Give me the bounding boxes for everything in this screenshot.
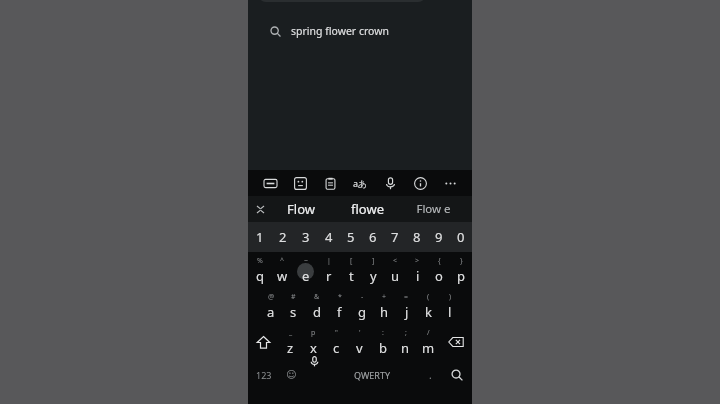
button[interactable]: Voice typing: [303, 360, 326, 390]
button[interactable]: ^: [271, 252, 294, 288]
button[interactable]: _: [279, 324, 302, 360]
staticText: _: [289, 328, 293, 338]
staticText: >: [415, 256, 420, 266]
button[interactable]: <: [384, 252, 406, 288]
staticText: u: [391, 267, 400, 285]
staticText: p: [311, 328, 316, 338]
staticText: d: [313, 303, 321, 321]
staticText: w: [277, 267, 288, 285]
button[interactable]: %: [248, 252, 271, 288]
staticText: m: [422, 339, 435, 357]
staticText: s: [290, 303, 297, 321]
button[interactable]: [: [340, 252, 362, 288]
staticText: ;: [405, 328, 407, 338]
staticText: a: [267, 303, 275, 321]
button[interactable]: 3: [294, 222, 317, 252]
staticText: p: [457, 267, 465, 285]
staticText: (: [427, 292, 430, 302]
staticText: r: [326, 267, 332, 285]
button[interactable]: Stickers: [290, 173, 310, 193]
button[interactable]: /: [417, 324, 440, 360]
staticText: h: [380, 303, 389, 321]
button[interactable]: Flow: [268, 196, 334, 222]
button[interactable]: &: [305, 288, 328, 324]
staticText: ☺: [286, 369, 297, 381]
staticText: 8: [413, 228, 421, 246]
staticText: v: [356, 339, 363, 357]
button[interactable]: :: [371, 324, 394, 360]
button[interactable]: Expand suggestions: [252, 201, 268, 217]
button[interactable]: ": [325, 324, 348, 360]
button[interactable]: ): [439, 288, 461, 324]
staticText: k: [425, 303, 432, 321]
button[interactable]: ;: [394, 324, 417, 360]
button[interactable]: Info: [410, 173, 430, 193]
button[interactable]: @: [259, 288, 282, 324]
staticText: e: [302, 267, 310, 285]
button[interactable]: Shift: [248, 324, 279, 360]
button[interactable]: Clipboard: [320, 173, 340, 193]
button[interactable]: 0: [450, 222, 472, 252]
button[interactable]: GIF: [260, 173, 280, 193]
button[interactable]: Emoji: [279, 360, 303, 390]
staticText: [: [350, 256, 353, 266]
button[interactable]: spring: [258, 0, 426, 2]
button[interactable]: ': [348, 324, 371, 360]
button[interactable]: (: [417, 288, 439, 324]
button[interactable]: More options: [440, 173, 460, 193]
button[interactable]: 4: [317, 222, 340, 252]
button[interactable]: =: [395, 288, 417, 324]
button[interactable]: |: [317, 252, 340, 288]
staticText: ": [335, 328, 338, 338]
button[interactable]: p: [302, 324, 325, 360]
button[interactable]: spring flower crown: [248, 16, 472, 46]
staticText: Flow e: [416, 201, 451, 217]
staticText: 5: [347, 228, 355, 246]
staticText: x: [310, 339, 317, 357]
button[interactable]: flowe: [334, 196, 400, 222]
staticText: .: [429, 368, 432, 382]
staticText: |: [327, 256, 331, 266]
staticText: 4: [325, 228, 333, 246]
staticText: <: [393, 256, 398, 266]
button[interactable]: Search: [442, 360, 472, 390]
button[interactable]: Translate: [350, 173, 370, 193]
button[interactable]: 2: [271, 222, 294, 252]
button[interactable]: Flow e: [400, 196, 466, 222]
staticText: o: [435, 267, 443, 285]
button[interactable]: 6: [362, 222, 384, 252]
button[interactable]: 8: [406, 222, 428, 252]
button[interactable]: -: [351, 288, 373, 324]
staticText: t: [349, 267, 354, 285]
staticText: y: [370, 267, 377, 285]
staticText: b: [379, 339, 387, 357]
button[interactable]: 123: [248, 360, 279, 390]
staticText: 6: [369, 228, 377, 246]
button[interactable]: 7: [384, 222, 406, 252]
staticText: 2: [279, 228, 287, 246]
button[interactable]: }: [450, 252, 472, 288]
button[interactable]: *: [328, 288, 351, 324]
button[interactable]: QWERTY: [326, 360, 419, 390]
staticText: 9: [435, 228, 443, 246]
staticText: &: [314, 292, 320, 302]
staticText: ]: [372, 256, 375, 266]
button[interactable]: Backspace: [440, 324, 472, 360]
button[interactable]: +: [373, 288, 395, 324]
staticText: j: [405, 303, 409, 321]
button[interactable]: 9: [428, 222, 450, 252]
button[interactable]: .: [419, 360, 442, 390]
button[interactable]: #: [282, 288, 305, 324]
staticText: %: [257, 256, 263, 266]
button[interactable]: Voice input: [380, 173, 400, 193]
staticText: QWERTY: [354, 369, 391, 381]
button[interactable]: 1: [248, 222, 271, 252]
button[interactable]: ~: [294, 252, 317, 288]
button[interactable]: ]: [362, 252, 384, 288]
button[interactable]: 5: [340, 222, 362, 252]
button[interactable]: {: [428, 252, 450, 288]
button[interactable]: >: [406, 252, 428, 288]
